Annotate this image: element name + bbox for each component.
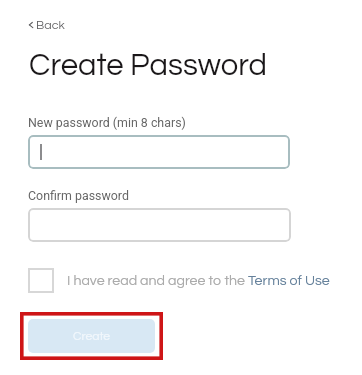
other: Accept terms checkbox — [28, 268, 54, 293]
staticText: I have read and agree to the — [67, 273, 248, 288]
staticText: Create — [73, 330, 111, 343]
staticText: New password (min 8 chars) — [28, 115, 186, 130]
button[interactable]: Confirm password field — [28, 208, 291, 242]
staticText: Confirm password — [28, 188, 129, 203]
button[interactable]: New password field — [28, 135, 290, 169]
staticText: Back — [36, 19, 65, 32]
button[interactable]: Back — [24, 13, 72, 33]
button[interactable]: Terms of Use — [248, 273, 330, 288]
staticText: Create Password — [29, 50, 267, 82]
button[interactable]: Create — [28, 319, 155, 353]
button[interactable]: Accept terms checkbox — [28, 268, 330, 293]
